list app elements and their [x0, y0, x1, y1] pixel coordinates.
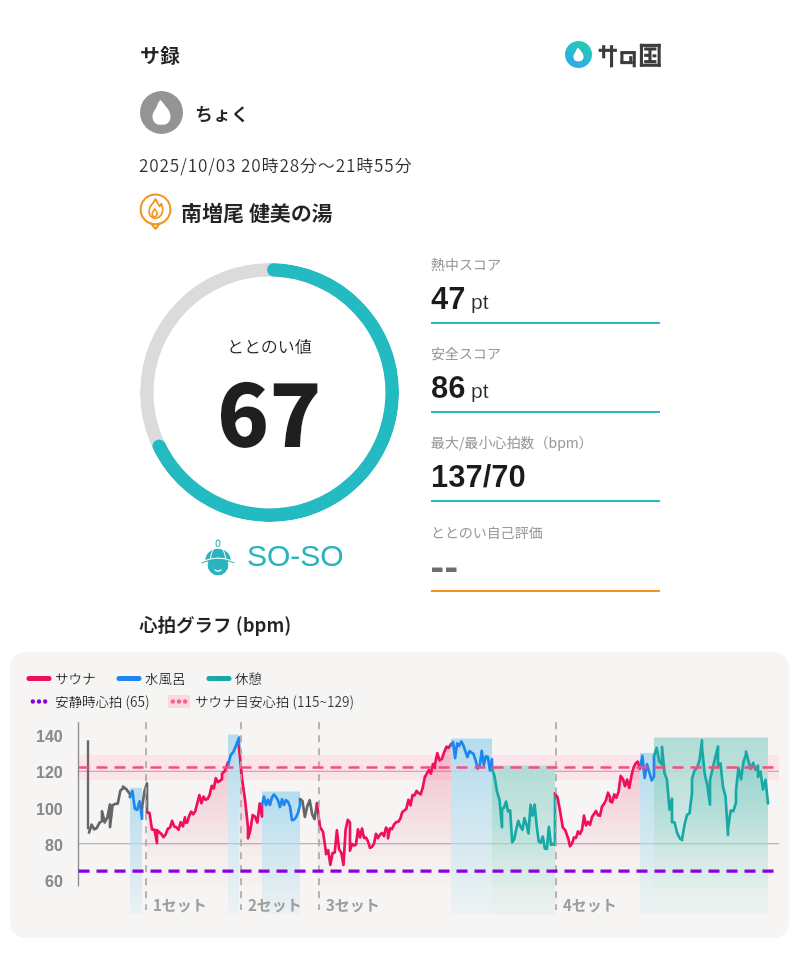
button[interactable]: 熱中スコア — [431, 254, 660, 324]
staticText: 心拍グラフ (bpm) — [139, 611, 292, 638]
staticText: 南増尾 健美の湯 — [181, 197, 333, 227]
staticText: 安全スコア — [431, 343, 501, 363]
staticText: 86 — [431, 370, 466, 405]
staticText: SO-SO — [247, 539, 344, 573]
staticText: 熱中スコア — [431, 254, 501, 274]
staticText: 80 — [45, 837, 63, 855]
staticText: 水風呂 — [145, 668, 186, 688]
staticText: pt — [471, 379, 489, 402]
button[interactable]: Sauna no Kuni home — [565, 41, 661, 68]
staticText: ととのい自己評価 — [431, 522, 543, 542]
staticText: 2025/10/03 20時28分〜21時55分 — [139, 152, 413, 177]
button[interactable]: 南増尾 健美の湯 — [138, 194, 333, 229]
staticText: pt — [471, 290, 489, 313]
button[interactable]: ととのい自己評価 — [431, 522, 660, 592]
staticText: 137/70 — [431, 459, 526, 494]
button[interactable]: SO-SO — [201, 537, 344, 577]
staticText: 120 — [36, 764, 63, 782]
button[interactable]: ととのい値 67 — [140, 263, 399, 522]
staticText: 140 — [36, 728, 63, 746]
button[interactable]: 最大/最小心拍数（bpm） — [431, 432, 660, 502]
staticText: 100 — [36, 801, 63, 819]
staticText: ちょく — [195, 100, 249, 126]
staticText: サ録 — [140, 40, 180, 69]
button[interactable]: ちょく — [140, 91, 249, 134]
staticText: 最大/最小心拍数（bpm） — [431, 432, 593, 452]
staticText: ととのい値 — [227, 333, 312, 358]
staticText: 3セット — [326, 894, 380, 916]
staticText: サウナ — [55, 668, 96, 688]
staticText: 60 — [45, 873, 63, 891]
staticText: 安静時心拍 (65) — [55, 691, 150, 711]
staticText: 休憩 — [235, 668, 262, 688]
staticText: 67 — [217, 347, 322, 472]
button[interactable]: 安全スコア — [431, 343, 660, 413]
staticText: 1セット — [153, 894, 207, 916]
staticText: 47 — [431, 281, 466, 316]
staticText: 2セット — [248, 894, 302, 916]
staticText: 4セット — [563, 894, 617, 916]
staticText: サウナ目安心拍 (115~129) — [195, 691, 355, 711]
